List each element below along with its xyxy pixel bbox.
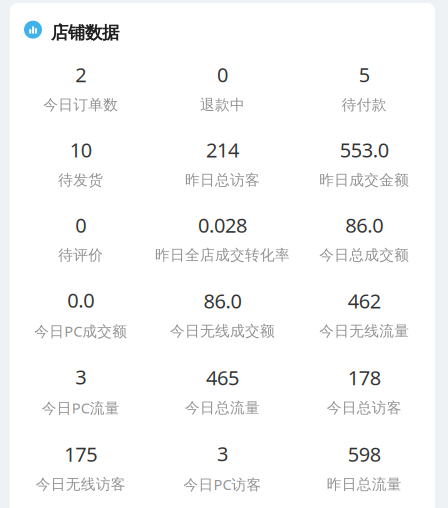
staticText: 今日无线访客 <box>36 475 126 493</box>
button[interactable]: 10 <box>10 134 152 187</box>
button[interactable]: 178 <box>293 362 435 415</box>
staticText: 退款中 <box>200 96 245 114</box>
button[interactable]: 3 <box>10 361 152 415</box>
button[interactable]: 598 <box>293 439 435 491</box>
staticText: 598 <box>348 441 381 467</box>
button[interactable]: 2 <box>10 59 152 112</box>
button[interactable]: 0 <box>10 210 152 262</box>
staticText: 3 <box>75 363 86 390</box>
staticText: 178 <box>348 364 381 391</box>
staticText: 今日订单数 <box>43 96 118 114</box>
button[interactable]: 86.0 <box>293 210 435 262</box>
staticText: 86.0 <box>345 212 383 238</box>
staticText: 昨日成交金额 <box>319 171 409 189</box>
staticText: 今日总流量 <box>185 399 260 417</box>
staticText: 553.0 <box>340 136 389 163</box>
staticText: 0.028 <box>198 212 247 238</box>
staticText: 462 <box>348 287 381 314</box>
button[interactable]: 0.028 <box>152 210 293 262</box>
staticText: 10 <box>70 136 92 163</box>
staticText: 今日PC流量 <box>42 398 120 417</box>
staticText: 店铺数据 <box>51 22 119 43</box>
staticText: 昨日全店成交转化率 <box>155 246 290 264</box>
button[interactable]: 553.0 <box>293 134 435 187</box>
staticText: 214 <box>206 136 239 163</box>
staticText: 465 <box>206 364 239 391</box>
staticText: 今日总成交额 <box>319 246 409 264</box>
staticText: 待付款 <box>342 96 387 114</box>
button[interactable]: 175 <box>10 439 152 491</box>
staticText: 今日PC访客 <box>183 475 261 494</box>
staticText: 待发货 <box>58 171 103 189</box>
staticText: 今日总访客 <box>327 399 402 417</box>
staticText: 昨日总流量 <box>327 475 402 493</box>
staticText: 待评价 <box>58 246 103 264</box>
button[interactable]: 86.0 <box>152 285 293 338</box>
staticText: 0.0 <box>67 287 94 313</box>
staticText: 昨日总访客 <box>185 171 260 189</box>
staticText: 今日无线流量 <box>319 322 409 340</box>
staticText: 3 <box>217 440 228 467</box>
staticText: 86.0 <box>203 287 241 314</box>
staticText: 今日PC成交额 <box>34 321 127 341</box>
staticText: 175 <box>64 441 97 467</box>
button[interactable]: 462 <box>293 285 435 338</box>
button[interactable]: 3 <box>152 438 293 492</box>
button[interactable]: 465 <box>152 362 293 415</box>
staticText: 0 <box>217 61 228 88</box>
staticText: 5 <box>359 61 370 88</box>
button[interactable]: 0.0 <box>10 285 152 339</box>
staticText: 0 <box>75 212 86 238</box>
staticText: 今日无线成交额 <box>170 322 275 340</box>
button[interactable]: 店铺数据 <box>10 3 435 59</box>
staticText: 2 <box>75 61 86 88</box>
button[interactable]: 214 <box>152 134 293 187</box>
button[interactable]: 0 <box>152 59 293 112</box>
button[interactable]: 5 <box>293 59 435 112</box>
